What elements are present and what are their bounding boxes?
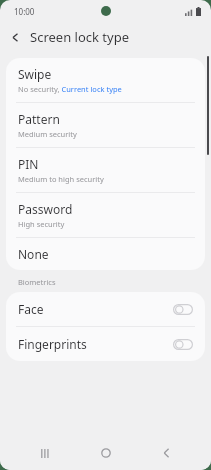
button[interactable]: Back [0, 22, 30, 52]
button[interactable]: Fingerprints [6, 327, 205, 361]
button[interactable]: Back [151, 438, 181, 468]
staticText: Swipe [18, 66, 52, 82]
staticText: No security, Current lock type [18, 84, 122, 94]
staticText: Medium security [18, 129, 77, 139]
staticText: 10:00 [14, 6, 35, 17]
button[interactable]: Pattern [6, 103, 205, 147]
staticText: Medium to high security [18, 174, 104, 184]
staticText: Biometrics [18, 277, 56, 287]
staticText: Pattern [18, 111, 60, 127]
staticText: None [18, 246, 49, 262]
button[interactable]: Swipe [6, 58, 205, 102]
staticText: Face [18, 301, 173, 317]
staticText: Fingerprints [18, 336, 173, 352]
button[interactable]: Password [6, 193, 205, 237]
button[interactable]: Recent apps [30, 438, 60, 468]
staticText: High security [18, 219, 65, 229]
button[interactable]: Face [6, 292, 205, 326]
button[interactable]: Home [91, 438, 121, 468]
button[interactable]: PIN [6, 148, 205, 192]
staticText: PIN [18, 156, 39, 172]
staticText: Password [18, 201, 73, 217]
staticText: Screen lock type [30, 28, 129, 46]
button[interactable]: None [6, 238, 205, 270]
